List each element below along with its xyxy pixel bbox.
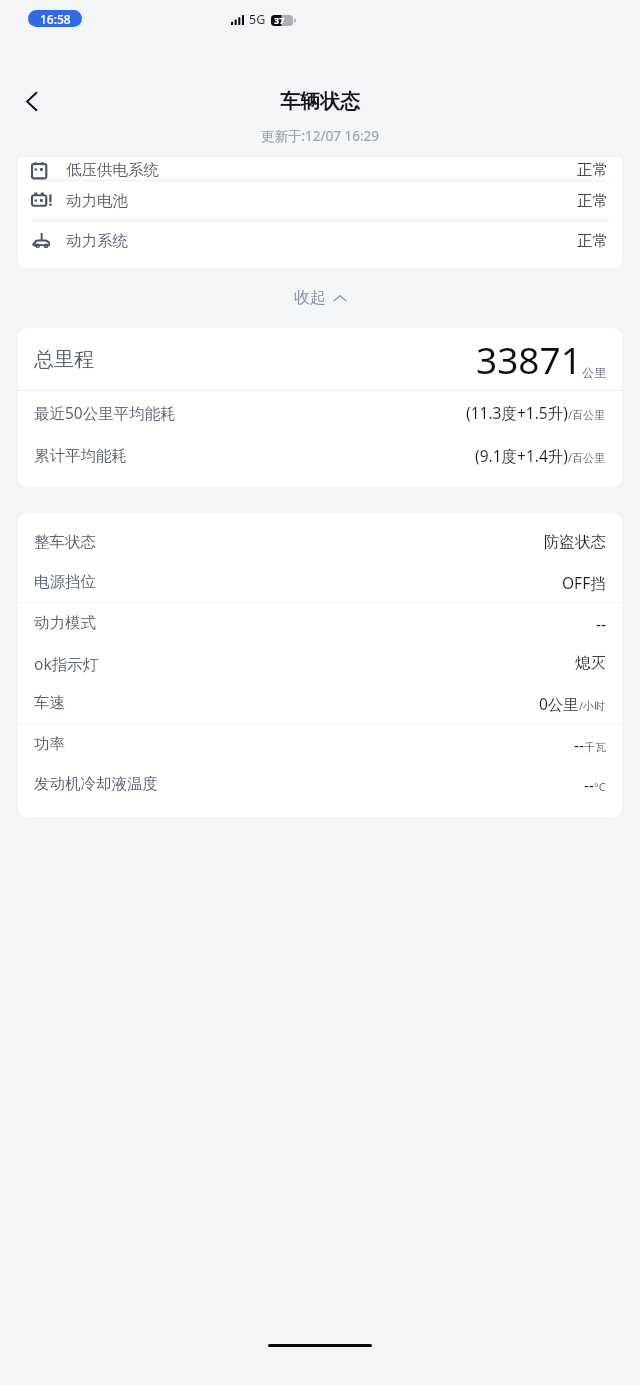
- staticText: 公里: [582, 365, 606, 380]
- staticText: °C: [594, 779, 606, 794]
- staticText: 5G: [249, 11, 266, 28]
- staticText: ok指示灯: [34, 653, 99, 674]
- staticText: 33871: [476, 334, 582, 384]
- staticText: 16:58: [40, 11, 71, 27]
- staticText: 功率: [34, 734, 65, 754]
- staticText: 整车状态: [34, 532, 96, 552]
- button[interactable]: 车速: [18, 683, 622, 723]
- staticText: 0公里: [539, 693, 579, 714]
- staticText: 总里程: [34, 347, 94, 372]
- button[interactable]: 功率: [18, 724, 622, 764]
- staticText: 更新于:12/07 16:29: [261, 127, 380, 145]
- button[interactable]: Back: [12, 81, 52, 121]
- button[interactable]: 动力系统: [18, 221, 622, 260]
- staticText: 37: [274, 14, 285, 26]
- staticText: --: [584, 774, 594, 795]
- staticText: (11.3度+1.5升): [466, 402, 568, 423]
- staticText: 正常: [577, 160, 608, 180]
- staticText: /小时: [579, 698, 606, 713]
- button[interactable]: 整车状态: [18, 522, 622, 562]
- staticText: 电源挡位: [34, 572, 96, 592]
- staticText: 收起: [294, 288, 326, 308]
- staticText: OFF挡: [562, 572, 606, 593]
- staticText: 低压供电系统: [66, 160, 159, 180]
- staticText: 最近50公里平均能耗: [34, 402, 176, 423]
- staticText: 正常: [577, 231, 608, 251]
- button[interactable]: 最近50公里平均能耗: [18, 391, 622, 434]
- staticText: 累计平均能耗: [34, 446, 127, 466]
- staticText: 车速: [34, 693, 65, 713]
- staticText: /百公里: [568, 450, 606, 465]
- staticText: 动力系统: [66, 231, 128, 251]
- staticText: 动力模式: [34, 613, 96, 633]
- staticText: /百公里: [568, 407, 606, 422]
- button[interactable]: 总里程: [18, 328, 622, 390]
- staticText: 动力电池: [66, 191, 128, 211]
- button[interactable]: 发动机冷却液温度: [18, 764, 622, 804]
- button[interactable]: 收起: [276, 280, 364, 316]
- staticText: 车辆状态: [280, 89, 360, 114]
- staticText: --: [596, 613, 606, 634]
- staticText: 正常: [577, 191, 608, 211]
- staticText: 熄灭: [575, 653, 606, 673]
- button[interactable]: 累计平均能耗: [18, 434, 622, 477]
- button[interactable]: 动力电池: [18, 181, 622, 220]
- button[interactable]: ok指示灯: [18, 643, 622, 683]
- staticText: 发动机冷却液温度: [34, 774, 158, 794]
- staticText: 千瓦: [584, 740, 606, 754]
- staticText: --: [574, 734, 584, 755]
- staticText: 防盗状态: [544, 532, 606, 552]
- button[interactable]: 电源挡位: [18, 562, 622, 602]
- button[interactable]: 动力模式: [18, 603, 622, 643]
- staticText: (9.1度+1.4升): [475, 445, 568, 466]
